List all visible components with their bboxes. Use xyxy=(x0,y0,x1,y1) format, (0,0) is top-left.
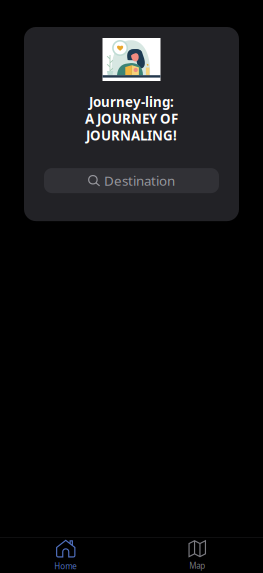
staticText: Home xyxy=(54,561,77,571)
button[interactable]: Map xyxy=(131,536,263,573)
staticText: JOURNALING! xyxy=(86,126,177,144)
staticText: A JOURNEY OF xyxy=(85,110,178,127)
button[interactable]: Destination xyxy=(44,168,219,193)
staticText: Journey-ling: xyxy=(89,93,174,111)
button[interactable]: Home xyxy=(0,535,131,573)
staticText: Destination xyxy=(104,172,175,189)
staticText: Map xyxy=(189,560,205,571)
